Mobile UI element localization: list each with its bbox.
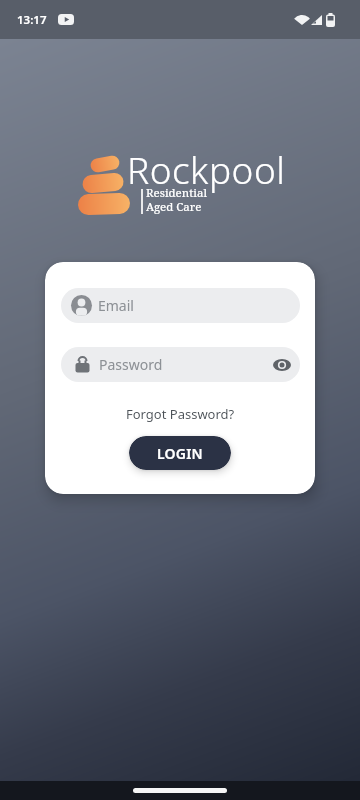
- button[interactable]: Password: [61, 347, 300, 382]
- staticText: 13:17: [17, 12, 47, 28]
- staticText: Residential: [146, 185, 207, 201]
- staticText: Aged Care: [146, 199, 202, 215]
- button[interactable]: Forgot Password?: [126, 405, 235, 423]
- staticText: Rockpool: [127, 144, 286, 194]
- button[interactable]: LOGIN: [129, 436, 231, 470]
- staticText: Password: [99, 355, 163, 374]
- staticText: LOGIN: [157, 444, 203, 463]
- staticText: Forgot Password?: [126, 405, 235, 423]
- staticText: Email: [98, 296, 134, 315]
- button[interactable]: Email: [61, 288, 300, 323]
